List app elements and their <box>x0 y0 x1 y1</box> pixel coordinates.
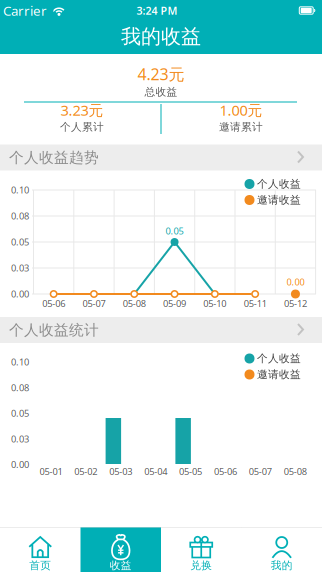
staticText: 05-02 <box>74 465 97 478</box>
staticText: 个人收益趋势 <box>9 148 99 166</box>
staticText: 05-05 <box>179 465 202 478</box>
staticText: 05-08 <box>123 297 146 310</box>
staticText: 0.08 <box>11 210 29 222</box>
button[interactable]: 我的 <box>241 527 322 572</box>
staticText: 05-06 <box>214 465 237 478</box>
staticText: 05-07 <box>82 297 105 310</box>
staticText: 0.05 <box>11 407 29 419</box>
staticText: 我的收益 <box>121 24 201 49</box>
staticText: 邀请收益 <box>257 368 301 381</box>
staticText: 0.00 <box>286 276 304 288</box>
staticText: 个人收益统计 <box>9 321 99 339</box>
staticText: 个人累计 <box>60 120 104 133</box>
button[interactable]: 兑换 <box>161 527 241 572</box>
button[interactable]: 收益 <box>80 527 161 572</box>
staticText: 0.00 <box>11 458 29 471</box>
staticText: 兑换 <box>190 559 212 572</box>
staticText: 0.03 <box>11 433 29 445</box>
staticText: 3:24 PM <box>136 3 177 18</box>
staticText: 0.10 <box>11 184 29 196</box>
staticText: 05-08 <box>284 465 307 478</box>
staticText: 0.00 <box>11 288 29 300</box>
staticText: 个人收益 <box>257 352 301 365</box>
staticText: Carrier <box>3 2 47 19</box>
staticText: 总收益 <box>144 85 177 98</box>
staticText: 05-06 <box>42 297 65 310</box>
staticText: 1.00元 <box>219 100 262 120</box>
staticText: 05-03 <box>109 465 132 478</box>
staticText: 邀请累计 <box>219 120 263 133</box>
staticText: 05-07 <box>249 465 272 478</box>
staticText: 4.23元 <box>137 63 184 85</box>
staticText: 0.03 <box>11 262 29 274</box>
staticText: 05-12 <box>284 297 307 310</box>
staticText: 05-11 <box>244 297 267 310</box>
button[interactable]: 个人收益趋势 <box>0 144 322 170</box>
staticText: 05-09 <box>163 297 186 310</box>
staticText: 个人收益 <box>257 177 301 190</box>
staticText: 05-01 <box>39 465 62 478</box>
staticText: 首页 <box>29 559 51 572</box>
staticText: 05-10 <box>203 297 226 310</box>
staticText: 0.08 <box>11 381 29 394</box>
staticText: 0.10 <box>11 356 29 368</box>
staticText: 3.23元 <box>60 100 103 120</box>
staticText: 0.05 <box>11 236 29 248</box>
button[interactable]: 个人收益统计 <box>0 317 322 343</box>
staticText: 收益 <box>110 559 132 572</box>
button[interactable]: 首页 <box>0 527 80 572</box>
staticText: 05-04 <box>144 465 167 478</box>
staticText: 我的 <box>271 559 293 572</box>
staticText: 邀请收益 <box>257 193 301 206</box>
staticText: 0.05 <box>165 225 183 237</box>
